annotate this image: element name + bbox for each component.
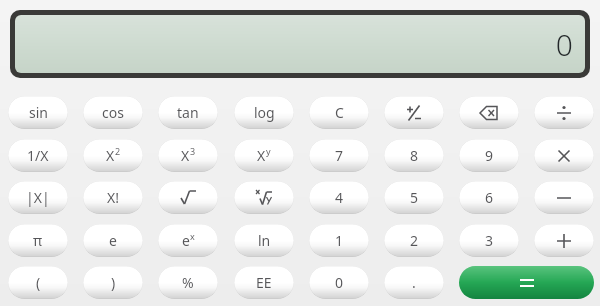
button[interactable]: 5 <box>384 181 444 214</box>
staticText: 6 <box>485 188 494 207</box>
staticText: 1/X <box>27 146 49 165</box>
button[interactable]: X <box>234 139 294 172</box>
button[interactable]: ln <box>234 224 294 257</box>
staticText: X <box>257 146 266 165</box>
button[interactable]: 2 <box>384 224 444 257</box>
staticText: π <box>33 231 43 250</box>
staticText: 8 <box>410 146 419 165</box>
button[interactable]: π <box>8 224 68 257</box>
staticText: y <box>266 145 271 157</box>
staticText: 0 <box>555 24 573 65</box>
button[interactable]: |X| <box>8 181 68 214</box>
button[interactable]: 0 <box>309 266 369 299</box>
staticText: 3 <box>190 145 196 157</box>
staticText: X <box>181 146 190 165</box>
button[interactable]: . <box>384 266 444 299</box>
staticText: sin <box>29 103 48 122</box>
button[interactable]: 4 <box>309 181 369 214</box>
button[interactable]: Multiply <box>534 139 594 172</box>
staticText: % <box>182 273 194 292</box>
staticText: 0 <box>335 273 344 292</box>
button[interactable]: e <box>158 224 218 257</box>
staticText: |X| <box>26 188 50 207</box>
staticText: X! <box>107 188 119 207</box>
staticText: cos <box>102 103 124 122</box>
staticText: X <box>106 146 115 165</box>
button[interactable]: ( <box>8 266 68 299</box>
button[interactable]: C <box>309 96 369 129</box>
staticText: tan <box>177 103 199 122</box>
staticText: e <box>182 231 190 250</box>
button[interactable]: Square root <box>158 181 218 214</box>
button[interactable]: 3 <box>459 224 519 257</box>
button[interactable]: e <box>83 224 143 257</box>
button[interactable]: X <box>158 139 218 172</box>
staticText: 4 <box>335 188 344 207</box>
staticText: e <box>109 231 117 250</box>
button[interactable]: ) <box>83 266 143 299</box>
staticText: 2 <box>115 145 121 157</box>
button[interactable]: Plus <box>534 224 594 257</box>
staticText: ( <box>36 273 41 292</box>
button[interactable]: Nth root <box>234 181 294 214</box>
button[interactable]: Plus minus <box>384 96 444 129</box>
button[interactable]: sin <box>8 96 68 129</box>
button[interactable]: Minus <box>534 181 594 214</box>
button[interactable]: 7 <box>309 139 369 172</box>
staticText: 3 <box>485 231 494 250</box>
button[interactable]: 6 <box>459 181 519 214</box>
button[interactable]: 8 <box>384 139 444 172</box>
button[interactable]: 1/X <box>8 139 68 172</box>
button[interactable]: X <box>83 139 143 172</box>
button[interactable]: EE <box>234 266 294 299</box>
staticText: 1 <box>335 231 344 250</box>
staticText: C <box>335 103 344 122</box>
staticText: 2 <box>410 231 419 250</box>
button[interactable]: Equals <box>459 266 594 299</box>
button[interactable]: % <box>158 266 218 299</box>
button[interactable]: tan <box>158 96 218 129</box>
button[interactable]: 1 <box>309 224 369 257</box>
staticText: ln <box>258 231 271 250</box>
button[interactable]: cos <box>83 96 143 129</box>
button[interactable]: Backspace <box>459 96 519 129</box>
staticText: 7 <box>335 146 344 165</box>
staticText: log <box>254 103 275 122</box>
staticText: 9 <box>485 146 494 165</box>
staticText: 5 <box>410 188 419 207</box>
button[interactable]: log <box>234 96 294 129</box>
staticText: x <box>190 230 195 242</box>
staticText: EE <box>256 273 272 292</box>
button[interactable]: X! <box>83 181 143 214</box>
button[interactable]: Divide <box>534 96 594 129</box>
staticText: . <box>412 273 416 292</box>
staticText: ) <box>111 273 116 292</box>
button[interactable]: 9 <box>459 139 519 172</box>
